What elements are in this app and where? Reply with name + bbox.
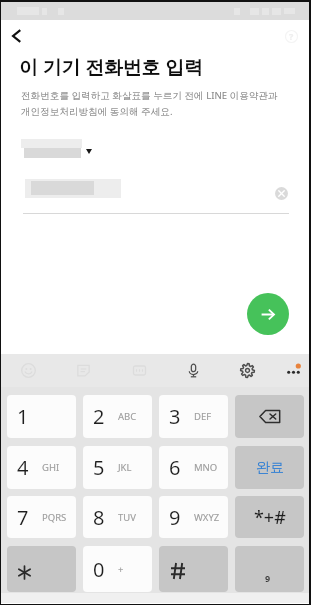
staticText: 이 기기 전화번호 입력 [19,54,203,80]
staticText: 9 [169,504,181,531]
button[interactable]: 6 [159,446,228,489]
staticText: GHI [42,461,60,474]
staticText: 완료 [256,459,284,477]
staticText: 1 [17,403,29,430]
staticText: 0 [93,556,105,583]
button[interactable]: Back [3,23,29,49]
staticText: MNO [194,461,218,474]
button[interactable]: Change language [235,546,304,592]
button[interactable]: 5 [83,446,152,489]
staticText: ABC [118,410,137,423]
button[interactable]: Clear [270,182,292,204]
staticText: 5 [93,454,105,481]
staticText: TUV [118,511,136,524]
button[interactable]: Backspace [235,395,304,438]
button[interactable]: 3 [159,395,228,438]
staticText: 6 [169,454,181,481]
button[interactable]: More options [278,356,308,385]
button[interactable]: 완료 [235,446,304,489]
button[interactable]: Help [279,24,303,48]
staticText: 4 [17,454,29,481]
staticText: 전화번호를 입력하고 화살표를 누르기 전에 LINE 이용약관과 개인정보처리… [21,89,278,117]
button[interactable]: 9 [159,496,228,538]
button[interactable]: Next [247,293,289,335]
button[interactable]: 8 [83,496,152,538]
staticText: JKL [118,461,132,474]
staticText: *+# [254,505,286,530]
button[interactable]: Asterisk [7,546,76,592]
button[interactable]: 1 [7,395,76,438]
button[interactable] [18,136,96,162]
button[interactable]: Settings [232,356,262,385]
staticText: 9 [265,572,271,584]
button[interactable]: 2 [83,395,152,438]
staticText: ? [289,30,294,42]
staticText: 8 [93,504,105,531]
button[interactable]: Hash [159,546,228,592]
button[interactable]: *+# [235,496,304,538]
button[interactable]: 7 [7,496,76,538]
staticText: DEF [194,410,212,423]
staticText: 2 [93,403,105,430]
button[interactable]: Voice input [178,356,208,385]
staticText: 3 [169,403,181,430]
staticText: WXYZ [194,511,220,524]
button[interactable]: 0 [83,546,152,592]
staticText: 7 [17,504,29,531]
button[interactable]: 4 [7,446,76,489]
staticText: PQRS [42,511,67,524]
staticText: + [118,563,124,576]
